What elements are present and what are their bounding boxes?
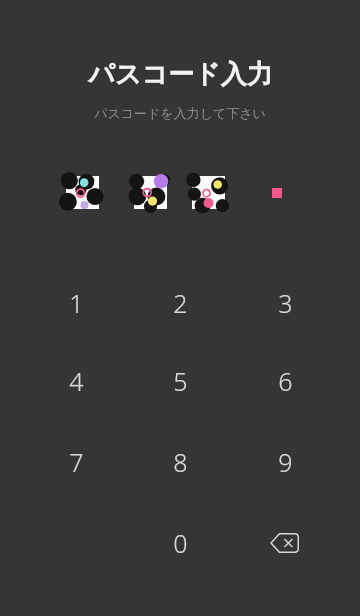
button[interactable]: Digit 8 <box>134 430 226 494</box>
staticText: 3 <box>278 286 293 320</box>
staticText: 7 <box>69 445 84 479</box>
button[interactable]: Digit 4 <box>30 349 122 413</box>
button[interactable]: Digit 9 <box>239 430 331 494</box>
staticText: 8 <box>173 445 188 479</box>
staticText: パスコードを入力して下さい <box>94 105 266 121</box>
staticText: 6 <box>278 364 293 398</box>
staticText: 5 <box>173 364 188 398</box>
staticText: 9 <box>278 445 293 479</box>
staticText: 2 <box>173 286 188 320</box>
button[interactable]: Digit 6 <box>239 349 331 413</box>
button[interactable]: Delete <box>239 511 331 575</box>
button[interactable]: Digit 5 <box>134 349 226 413</box>
staticText: 0 <box>173 526 188 560</box>
staticText: 4 <box>69 364 84 398</box>
button[interactable]: Digit 7 <box>30 430 122 494</box>
staticText: 1 <box>69 286 84 320</box>
button[interactable]: Digit 2 <box>134 271 226 335</box>
staticText: パスコード入力 <box>88 58 273 91</box>
button[interactable]: Digit 1 <box>30 271 122 335</box>
button[interactable]: Digit 0 <box>134 511 226 575</box>
button[interactable]: Digit 3 <box>239 271 331 335</box>
